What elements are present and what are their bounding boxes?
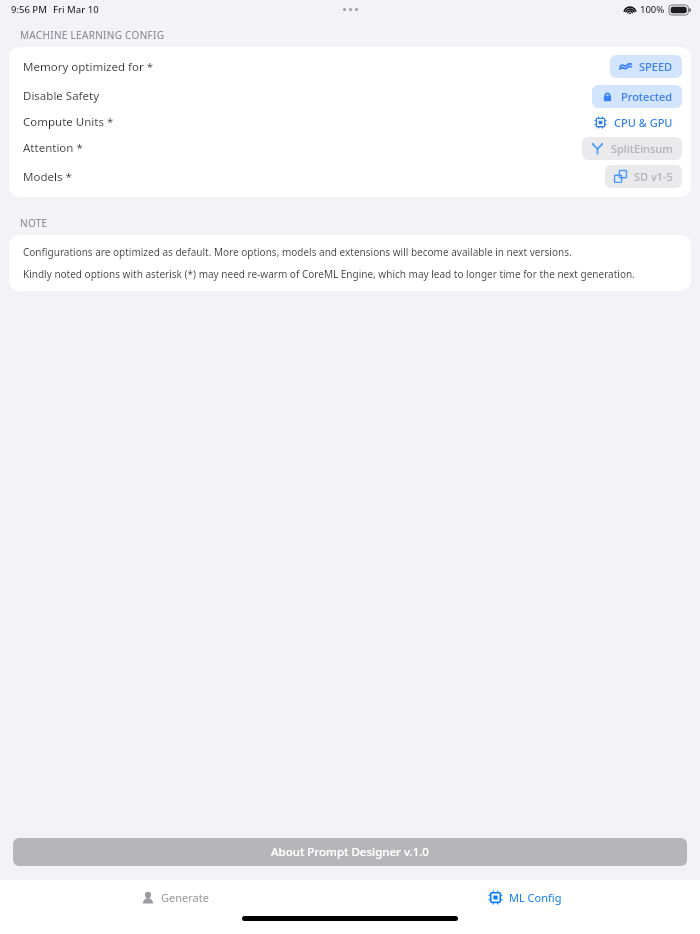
staticText: Models * — [23, 169, 72, 185]
staticText: Configurations are optimized as default.… — [23, 245, 572, 259]
staticText: CPU & GPU — [614, 115, 673, 130]
staticText: NOTE — [20, 216, 48, 230]
button[interactable]: About Prompt Designer v.1.0 — [13, 838, 687, 866]
staticText: MACHINE LEARNING CONFIG — [20, 28, 165, 42]
staticText: Generate — [161, 890, 209, 905]
staticText: Compute Units * — [23, 114, 114, 130]
staticText: Protected — [621, 89, 673, 104]
staticText: Kindly noted options with asterisk (*) m… — [23, 267, 635, 281]
button[interactable]: Compute Units * — [9, 110, 691, 134]
button[interactable]: ML Config — [478, 886, 572, 909]
staticText: SPEED — [639, 59, 673, 74]
staticText: ML Config — [509, 890, 562, 905]
staticText: Memory optimized for * — [23, 59, 154, 75]
staticText: 9:56 PM — [11, 3, 47, 16]
button[interactable]: Disable Safety — [9, 82, 691, 110]
staticText: SD v1-5 — [634, 169, 673, 184]
button[interactable]: Memory optimized for * — [9, 51, 691, 82]
button[interactable]: Generate — [131, 886, 219, 909]
staticText: 100% — [640, 3, 665, 16]
staticText: SplitEinsum — [611, 141, 673, 156]
button[interactable]: Models * — [9, 162, 691, 191]
button[interactable]: Attention * — [9, 134, 691, 162]
button[interactable]: SPEED — [610, 55, 682, 78]
button[interactable]: SplitEinsum — [582, 137, 682, 160]
button[interactable]: Protected — [592, 85, 682, 108]
staticText: About Prompt Designer v.1.0 — [271, 844, 429, 860]
staticText: Fri Mar 10 — [53, 3, 99, 16]
button[interactable]: CPU & GPU — [585, 111, 682, 134]
staticText: Attention * — [23, 140, 83, 156]
staticText: Disable Safety — [23, 88, 100, 104]
button[interactable]: SD v1-5 — [605, 165, 682, 188]
